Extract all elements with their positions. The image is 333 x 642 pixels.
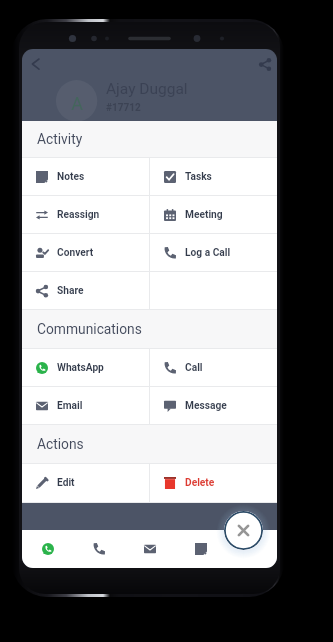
staticText: Call	[185, 362, 203, 374]
button[interactable]: Email	[124, 530, 175, 568]
button[interactable]: Notes	[22, 158, 149, 195]
staticText: Message	[185, 400, 227, 412]
button[interactable]: Email	[22, 387, 149, 424]
button[interactable]: Call	[73, 530, 124, 568]
staticText: Tasks	[185, 171, 212, 183]
staticText: Email	[57, 400, 83, 412]
staticText: Convert	[57, 247, 94, 259]
staticText: WhatsApp	[57, 362, 104, 374]
button[interactable]: Tasks	[150, 158, 277, 195]
staticText: Log a Call	[185, 247, 231, 259]
button[interactable]: Share	[22, 272, 149, 309]
button[interactable]: Meeting	[150, 196, 277, 233]
staticText: Reassign	[57, 209, 100, 221]
staticText: Share	[57, 285, 84, 297]
staticText: Meeting	[185, 209, 223, 221]
button[interactable]: Convert	[22, 234, 149, 271]
staticText: A	[71, 93, 83, 114]
button[interactable]: Call	[150, 349, 277, 386]
button[interactable]: Edit	[22, 464, 149, 502]
staticText: Ajay Duggal	[106, 80, 188, 98]
staticText: Notes	[57, 171, 85, 183]
button[interactable]: Notes	[175, 530, 226, 568]
button[interactable]: WhatsApp	[22, 530, 73, 568]
staticText: Actions	[37, 436, 84, 452]
button[interactable]: Close	[224, 511, 263, 550]
staticText: Activity	[37, 131, 83, 147]
staticText: Edit	[57, 477, 75, 489]
button[interactable]: WhatsApp	[22, 349, 149, 386]
button[interactable]: Back	[26, 51, 52, 77]
button[interactable]: Delete	[150, 464, 277, 502]
staticText: Communications	[37, 321, 142, 337]
button[interactable]: Reassign	[22, 196, 149, 233]
staticText: Delete	[185, 477, 215, 489]
button[interactable]: Log a Call	[150, 234, 277, 271]
button[interactable]: Share	[252, 51, 277, 77]
staticText: #17712	[106, 102, 141, 114]
button[interactable]: Message	[150, 387, 277, 424]
